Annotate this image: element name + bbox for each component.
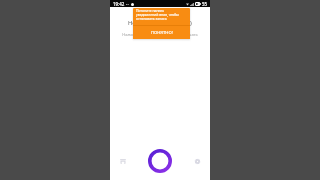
- staticText: Потяните панель уведомлений вниз, чтобы …: [136, 8, 179, 21]
- staticText: Нажмите кнопку записи, чтобы начать: [122, 32, 198, 37]
- button[interactable]: Start recording: [148, 149, 172, 173]
- staticText: 19:42: [113, 1, 125, 7]
- button[interactable]: Settings: [190, 154, 205, 169]
- staticText: 55: [202, 1, 208, 7]
- button[interactable]: ПОНЯТНО!: [133, 26, 190, 39]
- staticText: ПОНЯТНО!: [151, 30, 173, 36]
- staticText: Нет ни одной записи :): [128, 19, 192, 27]
- button[interactable]: Recordings: [115, 154, 130, 169]
